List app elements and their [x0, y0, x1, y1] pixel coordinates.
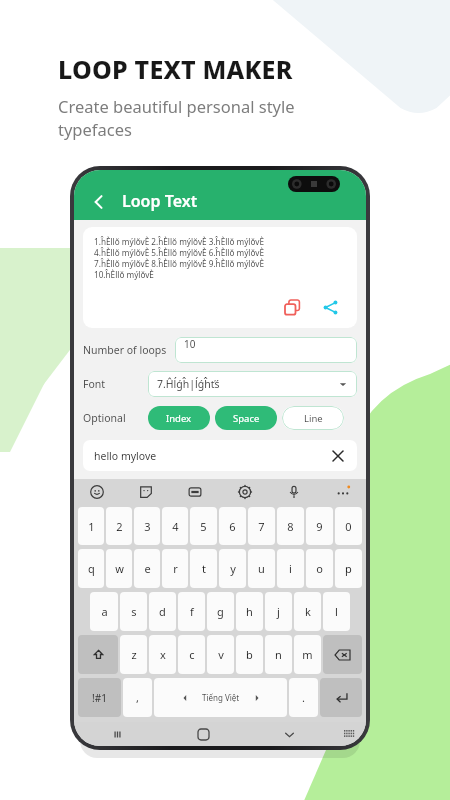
staticText: Index: [166, 412, 192, 425]
button[interactable]: 9: [306, 507, 333, 545]
staticText: 8: [287, 519, 294, 534]
button[interactable]: Emoji: [88, 483, 106, 501]
staticText: g: [217, 604, 224, 619]
staticText: !#1: [92, 691, 107, 705]
button[interactable]: Line: [282, 406, 344, 430]
button[interactable]: Space: [215, 406, 277, 430]
button[interactable]: Stickers: [137, 483, 155, 501]
staticText: m: [302, 647, 313, 662]
button[interactable]: r: [162, 549, 188, 588]
staticText: f: [190, 604, 194, 619]
button[interactable]: .: [289, 678, 318, 717]
staticText: Number of loops: [83, 343, 175, 357]
button[interactable]: h: [236, 592, 263, 631]
button[interactable]: Backspace: [323, 635, 362, 674]
button[interactable]: Share: [317, 294, 343, 320]
staticText: d: [159, 604, 166, 619]
button[interactable]: t: [190, 549, 217, 588]
staticText: c: [189, 647, 195, 662]
button[interactable]: m: [294, 635, 321, 674]
staticText: 1.ĥÈllŏ mýlŏvÈ 2.ĥÈllŏ mýlŏvÈ 3.ĥÈllŏ mý…: [94, 236, 264, 280]
button[interactable]: !#1: [78, 678, 121, 717]
button[interactable]: a: [90, 592, 118, 631]
button[interactable]: o: [306, 549, 333, 588]
staticText: hello mylove: [94, 449, 157, 463]
button[interactable]: i: [277, 549, 304, 588]
button[interactable]: 10: [175, 337, 357, 363]
staticText: 0: [345, 519, 352, 534]
button[interactable]: Clear text: [327, 445, 349, 467]
staticText: l: [335, 604, 338, 619]
staticText: v: [218, 647, 224, 662]
button[interactable]: s: [120, 592, 147, 631]
staticText: Tiếng Việt: [202, 692, 240, 703]
button[interactable]: ,: [123, 678, 152, 717]
button[interactable]: n: [265, 635, 292, 674]
button[interactable]: e: [134, 549, 160, 588]
button[interactable]: Tiếng Việt: [154, 678, 287, 717]
button[interactable]: Keyboard layout: [332, 722, 366, 746]
button[interactable]: 7.Ĥĺǵĥ|ĺǵĥťś: [148, 371, 357, 397]
button[interactable]: Shift: [78, 635, 118, 674]
staticText: u: [258, 561, 265, 576]
staticText: .: [302, 690, 305, 705]
button[interactable]: g: [207, 592, 234, 631]
button[interactable]: j: [265, 592, 292, 631]
button[interactable]: 6: [219, 507, 246, 545]
staticText: 2: [116, 519, 123, 534]
button[interactable]: Recents: [74, 722, 160, 746]
button[interactable]: l: [323, 592, 350, 631]
staticText: w: [115, 561, 124, 576]
button[interactable]: Voice input: [285, 483, 303, 501]
button[interactable]: w: [106, 549, 132, 588]
staticText: k: [305, 604, 311, 619]
staticText: j: [277, 604, 280, 619]
button[interactable]: z: [120, 635, 147, 674]
button[interactable]: d: [149, 592, 176, 631]
staticText: p: [345, 561, 352, 576]
staticText: Loop Text: [122, 190, 198, 212]
staticText: Space: [233, 412, 260, 425]
button[interactable]: 5: [190, 507, 217, 545]
button[interactable]: 3: [134, 507, 160, 545]
staticText: y: [230, 561, 236, 576]
staticText: e: [144, 561, 151, 576]
button[interactable]: Enter: [320, 678, 362, 717]
button[interactable]: 7: [248, 507, 275, 545]
staticText: Optional: [83, 411, 148, 425]
staticText: r: [173, 561, 178, 576]
staticText: x: [160, 647, 166, 662]
button[interactable]: v: [207, 635, 234, 674]
button[interactable]: Index: [148, 406, 210, 430]
button[interactable]: Hide keyboard: [246, 722, 332, 746]
button[interactable]: Back: [86, 189, 112, 215]
button[interactable]: Settings: [236, 483, 254, 501]
button[interactable]: b: [236, 635, 263, 674]
staticText: i: [289, 561, 292, 576]
staticText: ,: [136, 690, 139, 705]
staticText: 7.Ĥĺǵĥ|ĺǵĥťś: [157, 377, 338, 391]
button[interactable]: 8: [277, 507, 304, 545]
button[interactable]: k: [294, 592, 321, 631]
button[interactable]: x: [149, 635, 176, 674]
button[interactable]: More options: [334, 483, 352, 501]
button[interactable]: hello mylove: [83, 440, 357, 471]
button[interactable]: y: [219, 549, 246, 588]
button[interactable]: Home: [160, 722, 246, 746]
staticText: 6: [229, 519, 236, 534]
button[interactable]: f: [178, 592, 205, 631]
button[interactable]: Copy: [279, 294, 305, 320]
button[interactable]: GIF: [186, 483, 204, 501]
button[interactable]: 4: [162, 507, 188, 545]
staticText: n: [275, 647, 282, 662]
button[interactable]: c: [178, 635, 205, 674]
button[interactable]: q: [78, 549, 104, 588]
button[interactable]: 2: [106, 507, 132, 545]
button[interactable]: 0: [335, 507, 362, 545]
button[interactable]: 1.ĥÈllŏ mýlŏvÈ 2.ĥÈllŏ mýlŏvÈ 3.ĥÈllŏ mý…: [83, 227, 357, 328]
button[interactable]: p: [335, 549, 362, 588]
staticText: Font: [83, 377, 148, 391]
button[interactable]: u: [248, 549, 275, 588]
button[interactable]: 1: [78, 507, 104, 545]
staticText: a: [101, 604, 108, 619]
